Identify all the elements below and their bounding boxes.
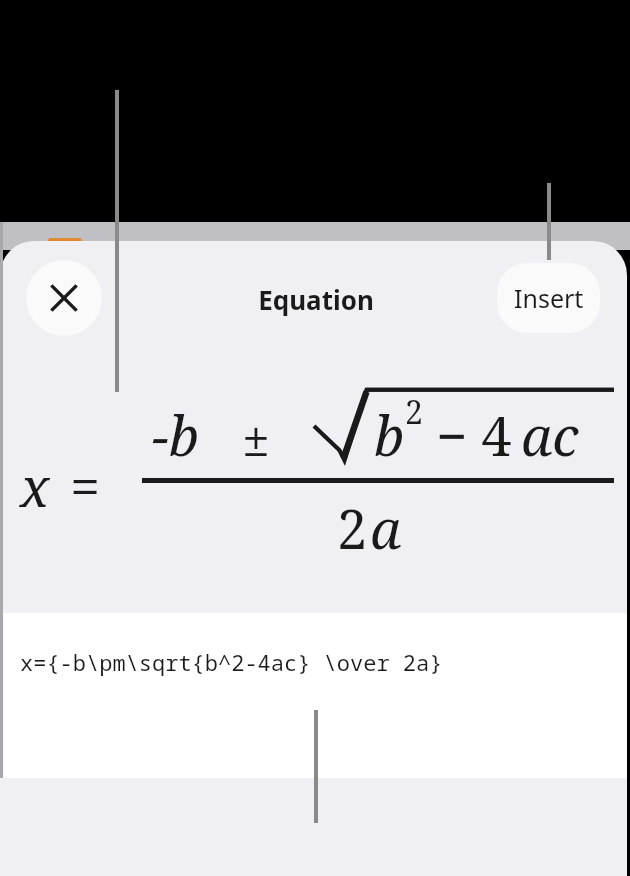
staticText: ± (242, 403, 270, 471)
staticText: a (370, 491, 402, 565)
button[interactable]: Insert (497, 263, 600, 333)
staticText: ac (521, 398, 579, 472)
staticText: x (20, 449, 50, 523)
staticText: = (70, 449, 101, 523)
staticText: Insert (514, 281, 584, 315)
staticText: b (374, 398, 405, 472)
staticText: − 4 (436, 398, 512, 472)
staticText: 2 (405, 390, 423, 434)
staticText: x={-b\pm\sqrt{b^2-4ac} \over 2a} (20, 647, 443, 677)
button[interactable]: Close (26, 260, 102, 336)
staticText: Equation (258, 282, 374, 317)
staticText: −b (152, 398, 200, 472)
staticText: 2 (337, 491, 368, 565)
